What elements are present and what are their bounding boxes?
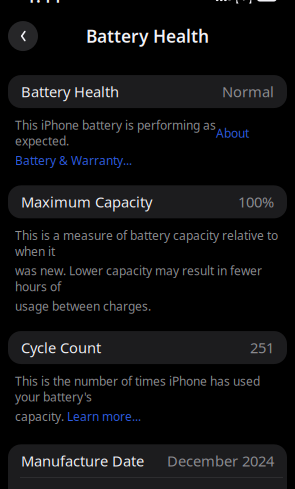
staticText: 1:44 <box>26 0 61 7</box>
staticText: 81 <box>262 0 272 2</box>
staticText: usage between charges. <box>15 298 151 314</box>
button[interactable]: Back <box>8 21 38 51</box>
staticText: Manufacture Date <box>21 451 144 471</box>
staticText: 100% <box>238 192 274 212</box>
button[interactable]: Battery Health <box>8 75 287 108</box>
staticText: Battery Health <box>21 82 119 101</box>
staticText: was new. Lower capacity may result in fe… <box>15 263 262 295</box>
staticText: Learn more... <box>67 408 141 424</box>
button[interactable]: Maximum Capacity <box>8 185 287 218</box>
staticText: This is a measure of battery capacity re… <box>15 227 278 259</box>
staticText: This is the number of times iPhone has u… <box>15 373 260 405</box>
staticText: This iPhone battery is performing as exp… <box>15 117 216 149</box>
staticText: capacity. <box>15 408 67 424</box>
staticText: Battery & Warranty... <box>15 152 132 168</box>
staticText: 251 <box>250 338 274 357</box>
staticText: Cycle Count <box>21 338 101 357</box>
staticText: About <box>216 125 249 141</box>
staticText: December 2024 <box>167 451 274 471</box>
button[interactable]: Manufacture Date <box>8 444 287 477</box>
staticText: Normal <box>222 82 274 101</box>
staticText: Maximum Capacity <box>21 192 152 212</box>
button[interactable]: Cycle Count <box>8 331 287 364</box>
staticText: Battery Health <box>86 24 209 47</box>
